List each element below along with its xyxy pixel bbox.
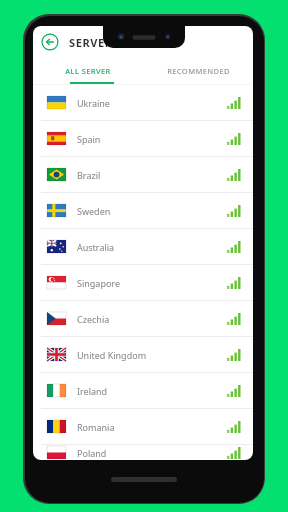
other: Signal strength (227, 169, 241, 181)
staticText: RECOMMENDED (167, 66, 230, 76)
staticText: Spain (77, 133, 227, 145)
button[interactable]: Australia (33, 229, 253, 264)
staticText: Australia (77, 241, 227, 253)
other: Signal strength (227, 447, 241, 459)
staticText: SERVER (69, 35, 113, 50)
staticText: Sweden (77, 205, 227, 217)
other: Signal strength (227, 385, 241, 397)
staticText: United Kingdom (77, 349, 227, 361)
button[interactable]: United Kingdom (33, 337, 253, 372)
staticText: Ireland (77, 385, 227, 397)
button[interactable]: RECOMMENDED (143, 58, 253, 84)
button[interactable]: Sweden (33, 193, 253, 228)
other: Signal strength (227, 349, 241, 361)
button[interactable]: Ukraine (33, 85, 253, 120)
staticText: Brazil (77, 169, 227, 181)
staticText: Ukraine (77, 97, 227, 109)
button[interactable]: Ireland (33, 373, 253, 408)
staticText: ALL SERVER (65, 66, 111, 76)
button[interactable]: Czechia (33, 301, 253, 336)
staticText: Poland (77, 447, 227, 459)
other: Signal strength (227, 133, 241, 145)
staticText: Czechia (77, 313, 227, 325)
staticText: Romania (77, 421, 227, 433)
button[interactable]: Brazil (33, 157, 253, 192)
button[interactable]: Back (41, 33, 59, 51)
button[interactable]: Spain (33, 121, 253, 156)
other: Signal strength (227, 421, 241, 433)
button[interactable]: Singapore (33, 265, 253, 300)
other: Signal strength (227, 205, 241, 217)
other: Signal strength (227, 277, 241, 289)
button[interactable]: ALL SERVER (33, 58, 143, 84)
other: Signal strength (227, 313, 241, 325)
button[interactable]: Poland (33, 445, 253, 460)
other: Signal strength (227, 241, 241, 253)
button[interactable]: Romania (33, 409, 253, 444)
other: Signal strength (227, 97, 241, 109)
staticText: Singapore (77, 277, 227, 289)
